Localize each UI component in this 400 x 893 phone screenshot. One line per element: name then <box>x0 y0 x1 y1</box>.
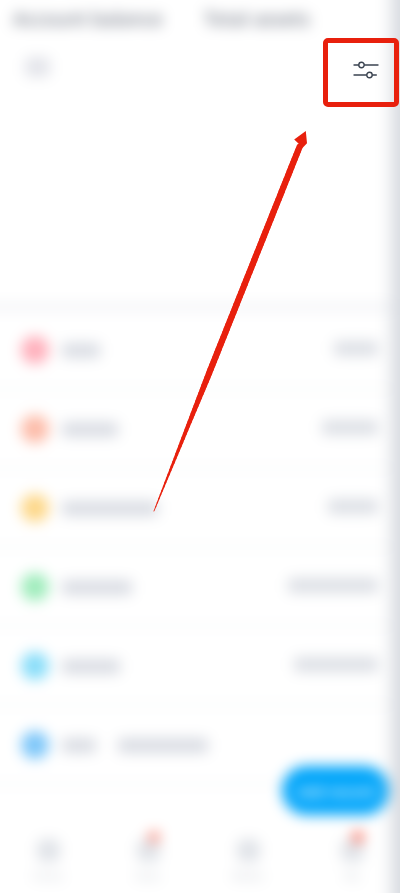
button[interactable] <box>0 469 400 548</box>
button[interactable]: Stats <box>108 839 188 889</box>
button[interactable] <box>0 627 400 706</box>
staticText: Account balance <box>13 6 163 32</box>
button[interactable] <box>0 706 400 785</box>
button[interactable] <box>0 311 400 390</box>
staticText: Total assets <box>204 6 310 32</box>
staticText: Add record <box>297 781 375 801</box>
button[interactable]: Add record <box>282 766 389 815</box>
button[interactable] <box>0 390 400 469</box>
button[interactable]: Home <box>8 839 88 889</box>
button[interactable]: Me <box>312 839 392 889</box>
button[interactable]: Filter <box>354 58 378 82</box>
button[interactable] <box>0 548 400 627</box>
button[interactable]: Wallet <box>208 839 288 889</box>
